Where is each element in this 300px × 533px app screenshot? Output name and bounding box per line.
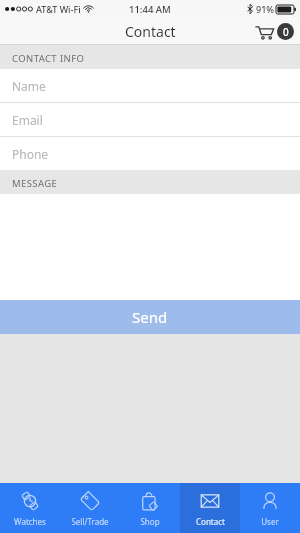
button[interactable]: Sell/Trade [60,483,120,533]
button[interactable]: User [240,483,300,533]
staticText: Name [12,78,46,94]
staticText: Sell/Trade [71,516,109,527]
staticText: 11:44 AM [129,3,171,16]
button[interactable]: Email [0,103,300,136]
staticText: Contact [196,516,225,527]
staticText: Shop [140,516,160,527]
button[interactable]: Send [0,300,300,334]
staticText: 91% [256,3,274,15]
button[interactable]: Name [0,69,300,102]
button[interactable]: Watches [0,483,60,533]
staticText: Phone [12,146,49,162]
staticText: MESSAGE [12,177,58,190]
button[interactable]: Cart, 0 items [255,23,294,40]
staticText: CONTACT INFO [12,52,85,65]
staticText: 0 [283,25,289,39]
button[interactable]: Phone [0,137,300,170]
staticText: AT&T Wi-Fi [36,3,81,15]
button[interactable]: Shop [120,483,180,533]
staticText: User [261,516,279,527]
staticText: Contact [125,22,176,41]
staticText: Watches [14,516,46,527]
button[interactable]: Contact [180,483,240,533]
staticText: Send [132,307,168,327]
staticText: Email [12,112,43,128]
